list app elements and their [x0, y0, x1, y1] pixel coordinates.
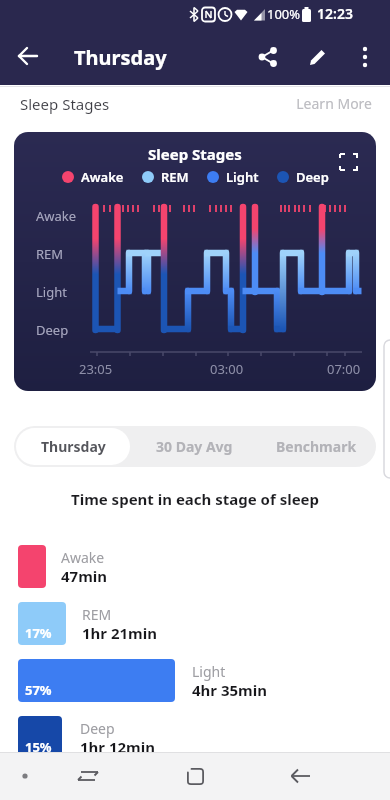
- button[interactable]: [347, 39, 383, 75]
- staticText: Time spent in each stage of sleep: [71, 489, 320, 509]
- staticText: 15%: [25, 738, 52, 756]
- staticText: 12:23: [317, 4, 353, 23]
- staticText: 23:05: [79, 360, 113, 378]
- staticText: 03:00: [210, 360, 244, 378]
- staticText: Light: [192, 662, 226, 681]
- staticText: REM: [82, 605, 112, 624]
- button[interactable]: [10, 39, 46, 75]
- button[interactable]: [66, 756, 110, 796]
- staticText: 07:00: [327, 360, 361, 378]
- button[interactable]: 57%: [18, 659, 175, 702]
- staticText: 47min: [61, 566, 108, 586]
- button[interactable]: 15%: [18, 716, 62, 759]
- button[interactable]: [18, 545, 46, 588]
- staticText: Thursday: [41, 437, 106, 456]
- staticText: Deep: [296, 168, 329, 186]
- staticText: Awake: [36, 207, 77, 225]
- staticText: Awake: [81, 168, 124, 186]
- staticText: REM: [161, 168, 189, 186]
- staticText: Awake: [61, 548, 105, 567]
- staticText: Sleep Stages: [20, 94, 110, 114]
- staticText: Light: [36, 283, 67, 301]
- staticText: 100%: [267, 5, 301, 23]
- button[interactable]: 17%: [18, 602, 66, 645]
- staticText: Thursday: [74, 44, 167, 71]
- button[interactable]: [278, 756, 322, 796]
- staticText: 57%: [25, 681, 52, 699]
- button[interactable]: Thursday: [16, 428, 130, 465]
- button[interactable]: Learn More: [296, 94, 372, 113]
- staticText: 1hr 12min: [80, 737, 155, 757]
- staticText: Benchmark: [276, 437, 357, 456]
- button[interactable]: Benchmark: [256, 426, 376, 467]
- staticText: Light: [226, 168, 259, 186]
- button[interactable]: [173, 756, 217, 796]
- staticText: REM: [36, 245, 64, 263]
- staticText: Deep: [80, 719, 115, 738]
- staticText: 1hr 21min: [82, 623, 157, 643]
- staticText: 4hr 35min: [192, 680, 267, 700]
- button[interactable]: [300, 39, 336, 75]
- staticText: Deep: [36, 321, 69, 339]
- staticText: 17%: [25, 624, 52, 642]
- button[interactable]: [250, 39, 286, 75]
- button[interactable]: Sleep Stages: [14, 132, 376, 391]
- staticText: 30 Day Avg: [156, 437, 233, 456]
- staticText: Sleep Stages: [148, 144, 242, 164]
- button[interactable]: 30 Day Avg: [132, 426, 256, 467]
